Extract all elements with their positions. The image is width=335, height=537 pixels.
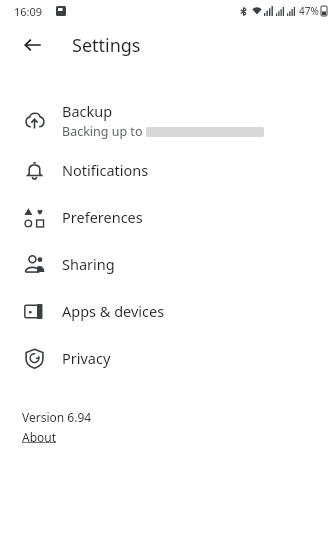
staticText: Notifications	[62, 160, 149, 180]
button[interactable]: Apps & devices	[0, 287, 335, 334]
button[interactable]: Preferences	[0, 193, 335, 240]
staticText: Version 6.94	[22, 409, 92, 425]
button[interactable]: Sharing	[0, 240, 335, 287]
staticText: Privacy	[62, 348, 111, 368]
button[interactable]: Privacy	[0, 334, 335, 381]
button[interactable]: Backup	[0, 94, 335, 146]
button[interactable]: About	[22, 429, 57, 445]
staticText: Apps & devices	[62, 301, 165, 321]
staticText: Settings	[72, 33, 141, 58]
staticText: About	[22, 429, 57, 445]
button[interactable]: Notifications	[0, 146, 335, 193]
staticText: 16:09	[14, 4, 43, 19]
staticText: Backup	[62, 101, 113, 121]
staticText: Backing up to	[62, 123, 146, 140]
staticText: 47%	[299, 4, 319, 18]
staticText: Sharing	[62, 254, 115, 274]
button[interactable]: Back	[16, 28, 50, 62]
staticText: Preferences	[62, 207, 143, 227]
